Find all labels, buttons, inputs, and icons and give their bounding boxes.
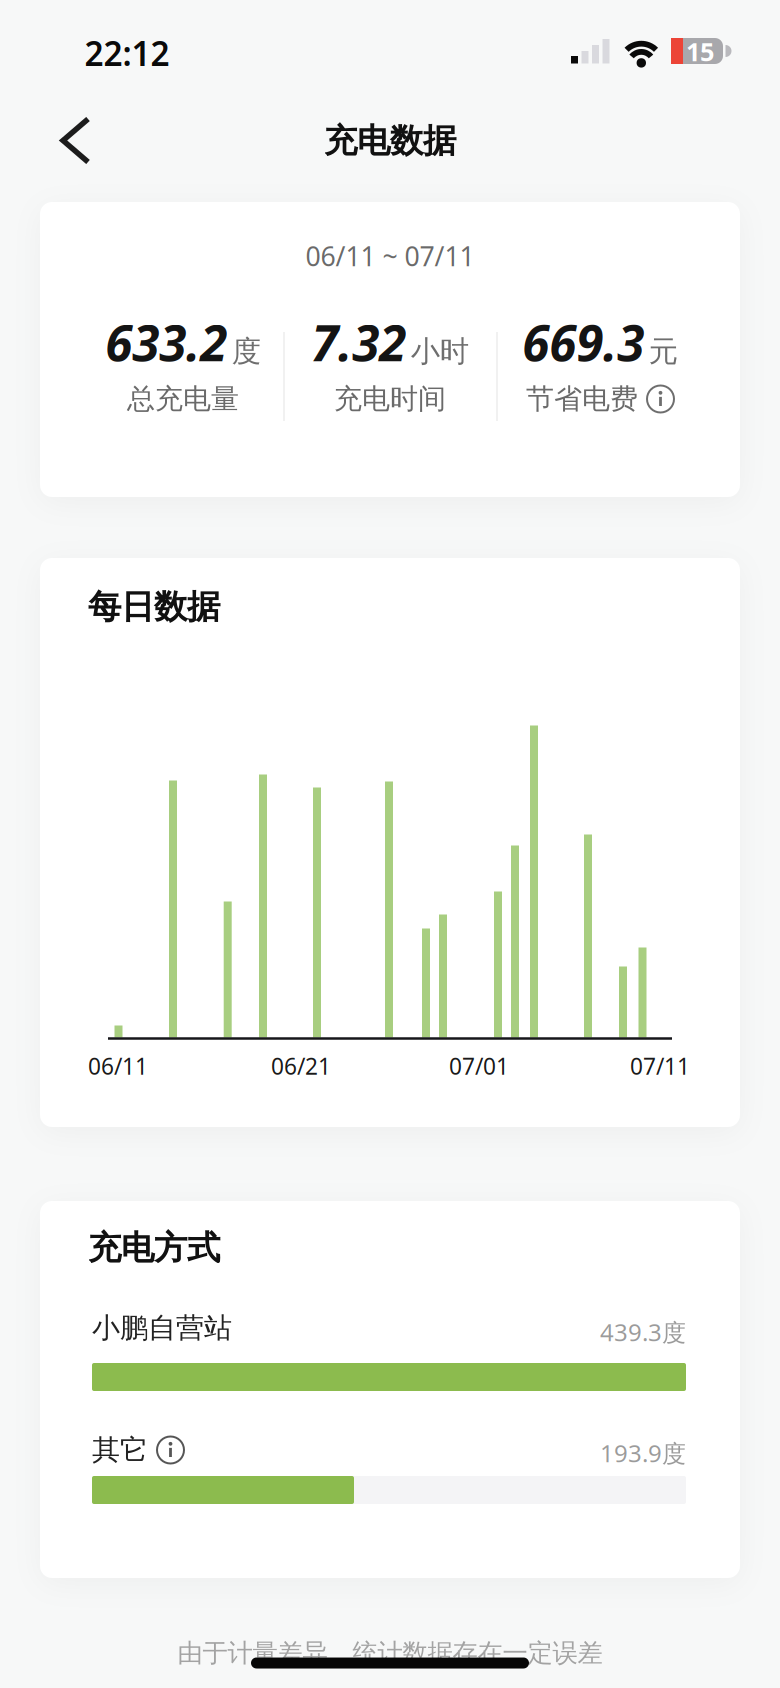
staticText: 439.3度 xyxy=(600,1316,686,1348)
staticText: 每日数据 xyxy=(88,586,220,627)
staticText: 由于计量差异，统计数据存在一定误差 xyxy=(177,1637,602,1668)
staticText: 22:12 xyxy=(84,31,169,75)
staticText: 06/21 xyxy=(271,1051,331,1081)
button[interactable]: Back xyxy=(42,106,110,174)
button[interactable]: 其它说明 xyxy=(157,1436,184,1463)
button[interactable]: 节省电费说明 xyxy=(647,385,674,412)
staticText: 193.9度 xyxy=(600,1437,686,1469)
staticText: 06/11 xyxy=(88,1051,148,1081)
staticText: 小时 xyxy=(411,333,469,369)
staticText: 07/01 xyxy=(449,1051,509,1081)
staticText: 节省电费 xyxy=(526,382,638,416)
staticText: 633.2 xyxy=(105,309,227,375)
staticText: 总充电量 xyxy=(127,382,239,416)
staticText: 07/11 xyxy=(630,1051,690,1081)
staticText: 15 xyxy=(686,35,714,68)
staticText: 06/11 ~ 07/11 xyxy=(305,238,474,274)
staticText: 元 xyxy=(649,333,678,369)
staticText: 充电方式 xyxy=(88,1227,220,1268)
staticText: 充电时间 xyxy=(334,382,446,416)
staticText: 669.3 xyxy=(522,309,644,375)
staticText: 其它 xyxy=(92,1433,148,1467)
staticText: 7.32 xyxy=(311,309,406,375)
staticText: 度 xyxy=(232,333,261,369)
staticText: 小鹏自营站 xyxy=(92,1311,232,1345)
staticText: 充电数据 xyxy=(324,120,456,161)
